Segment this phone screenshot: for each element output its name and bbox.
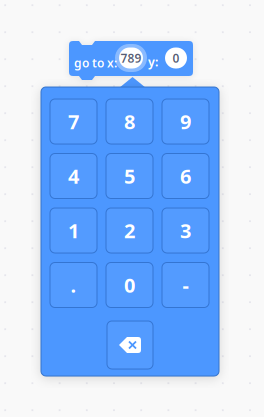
button[interactable]: 8 — [106, 99, 153, 144]
staticText: . — [70, 272, 76, 298]
button[interactable]: Delete — [107, 321, 153, 369]
staticText: 0 — [124, 272, 135, 298]
staticText: 0 — [172, 50, 179, 66]
staticText: 1 — [68, 217, 79, 244]
staticText: 3 — [180, 217, 191, 244]
button[interactable]: 4 — [50, 153, 97, 198]
button[interactable]: 7 — [50, 99, 97, 144]
staticText: 789 — [120, 50, 141, 66]
staticText: 5 — [124, 163, 135, 189]
button[interactable]: 3 — [162, 208, 209, 253]
staticText: 8 — [124, 108, 135, 135]
button[interactable]: 2 — [106, 208, 153, 253]
button[interactable]: 0 — [106, 262, 153, 307]
staticText: 2 — [124, 217, 135, 244]
button[interactable]: 9 — [162, 99, 209, 144]
staticText: - — [182, 272, 188, 298]
staticText: 9 — [180, 108, 191, 135]
button[interactable]: 1 — [50, 208, 97, 253]
staticText: 7 — [68, 108, 79, 135]
button[interactable]: . — [50, 262, 97, 307]
staticText: 6 — [180, 163, 191, 189]
staticText: 4 — [68, 163, 79, 189]
staticText: go to x: — [74, 55, 117, 71]
staticText: y: — [148, 54, 158, 70]
button[interactable]: 789 — [115, 44, 147, 72]
button[interactable]: 0 — [161, 44, 191, 72]
button[interactable]: 6 — [162, 153, 209, 198]
button[interactable]: 5 — [106, 153, 153, 198]
button[interactable]: - — [162, 262, 209, 307]
